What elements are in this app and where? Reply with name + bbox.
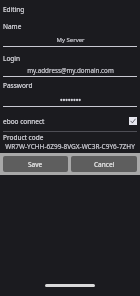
staticText: Password (3, 81, 33, 90)
staticText: WR7W-YCHH-6Z99-8VGX-WC3R-C9Y6-7ZHY (5, 142, 135, 151)
button[interactable]: Cancel (71, 156, 137, 172)
staticText: Name (3, 22, 22, 31)
button[interactable]: Save (3, 156, 68, 172)
staticText: my.address@my.domain.com (27, 66, 114, 75)
button[interactable]: eboo connect (3, 115, 137, 127)
staticText: Product code (3, 133, 44, 142)
staticText: Cancel (94, 160, 115, 169)
staticText: Editing (3, 5, 25, 14)
other: eboo connect checkbox (129, 117, 137, 125)
staticText: Login (3, 54, 21, 63)
staticText: Save (28, 160, 43, 169)
staticText: eboo connect (3, 117, 45, 126)
staticText: My Server (56, 36, 85, 44)
